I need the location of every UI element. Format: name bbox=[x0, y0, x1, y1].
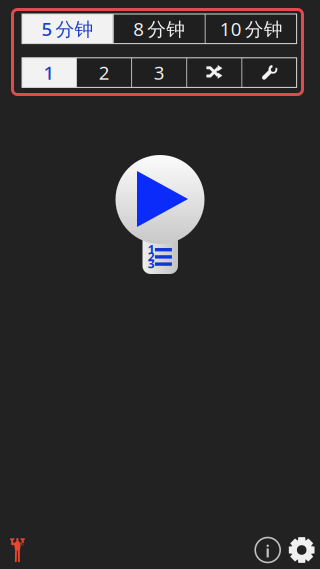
button[interactable]: 8 分钟 bbox=[114, 14, 205, 44]
button[interactable]: 3 bbox=[132, 58, 186, 87]
button[interactable] bbox=[187, 58, 241, 87]
button[interactable]: Settings bbox=[287, 533, 316, 567]
staticText: 8 分钟 bbox=[133, 16, 185, 41]
button[interactable]: Play bbox=[110, 150, 210, 280]
staticText: 2 bbox=[99, 60, 110, 85]
button[interactable]: 1 bbox=[22, 58, 76, 87]
staticText: 10 分钟 bbox=[220, 16, 283, 41]
button[interactable] bbox=[242, 58, 297, 87]
staticText: 3 bbox=[154, 60, 165, 85]
button[interactable]: 2 bbox=[77, 58, 131, 87]
staticText: 5 分钟 bbox=[41, 16, 93, 41]
button[interactable]: 10 分钟 bbox=[206, 14, 297, 44]
button[interactable]: Workout bbox=[6, 534, 29, 566]
staticText: 1 bbox=[44, 60, 55, 85]
staticText: 3 bbox=[148, 256, 155, 272]
staticText: 1 bbox=[148, 241, 155, 257]
button[interactable]: 5 分钟 bbox=[22, 14, 113, 44]
button[interactable]: Info bbox=[250, 533, 287, 567]
staticText: 2 bbox=[148, 248, 155, 264]
